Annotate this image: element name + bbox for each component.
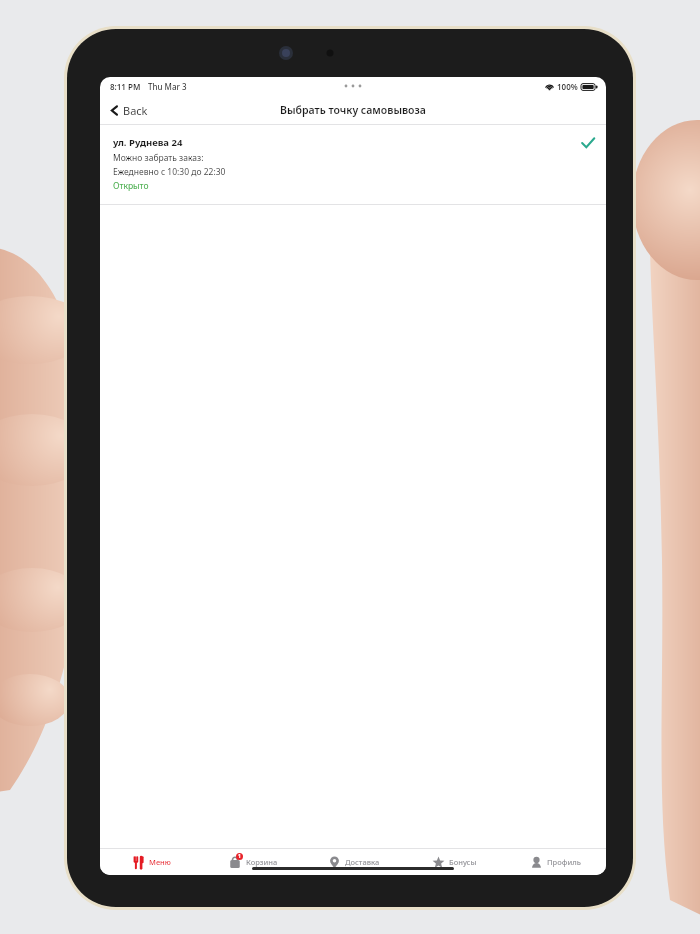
staticText: Можно забрать заказ: <box>113 152 204 164</box>
button[interactable]: Доставка <box>303 849 404 875</box>
staticText: Выбрать точку самовывоза <box>280 103 426 117</box>
staticText: 8:11 PM <box>110 81 141 92</box>
staticText: Открыто <box>113 180 149 192</box>
button[interactable]: ул. Руднева 24 <box>100 125 606 205</box>
button[interactable]: Корзина <box>202 849 303 875</box>
staticText: Бонусы <box>449 857 477 867</box>
staticText: Доставка <box>345 857 380 867</box>
staticText: ул. Руднева 24 <box>113 136 183 149</box>
staticText: Thu Mar 3 <box>148 81 187 92</box>
button[interactable]: Профиль <box>505 849 606 875</box>
button[interactable]: Меню <box>100 849 202 875</box>
staticText: Back <box>123 103 148 118</box>
staticText: Корзина <box>246 857 278 867</box>
staticText: Ежедневно с 10:30 до 22:30 <box>113 166 226 178</box>
button[interactable]: Back <box>106 100 151 121</box>
staticText: Профиль <box>547 857 581 867</box>
staticText: Меню <box>149 857 171 867</box>
staticText: 1 <box>238 853 241 860</box>
staticText: 100% <box>557 81 578 92</box>
button[interactable]: Бонусы <box>404 849 505 875</box>
